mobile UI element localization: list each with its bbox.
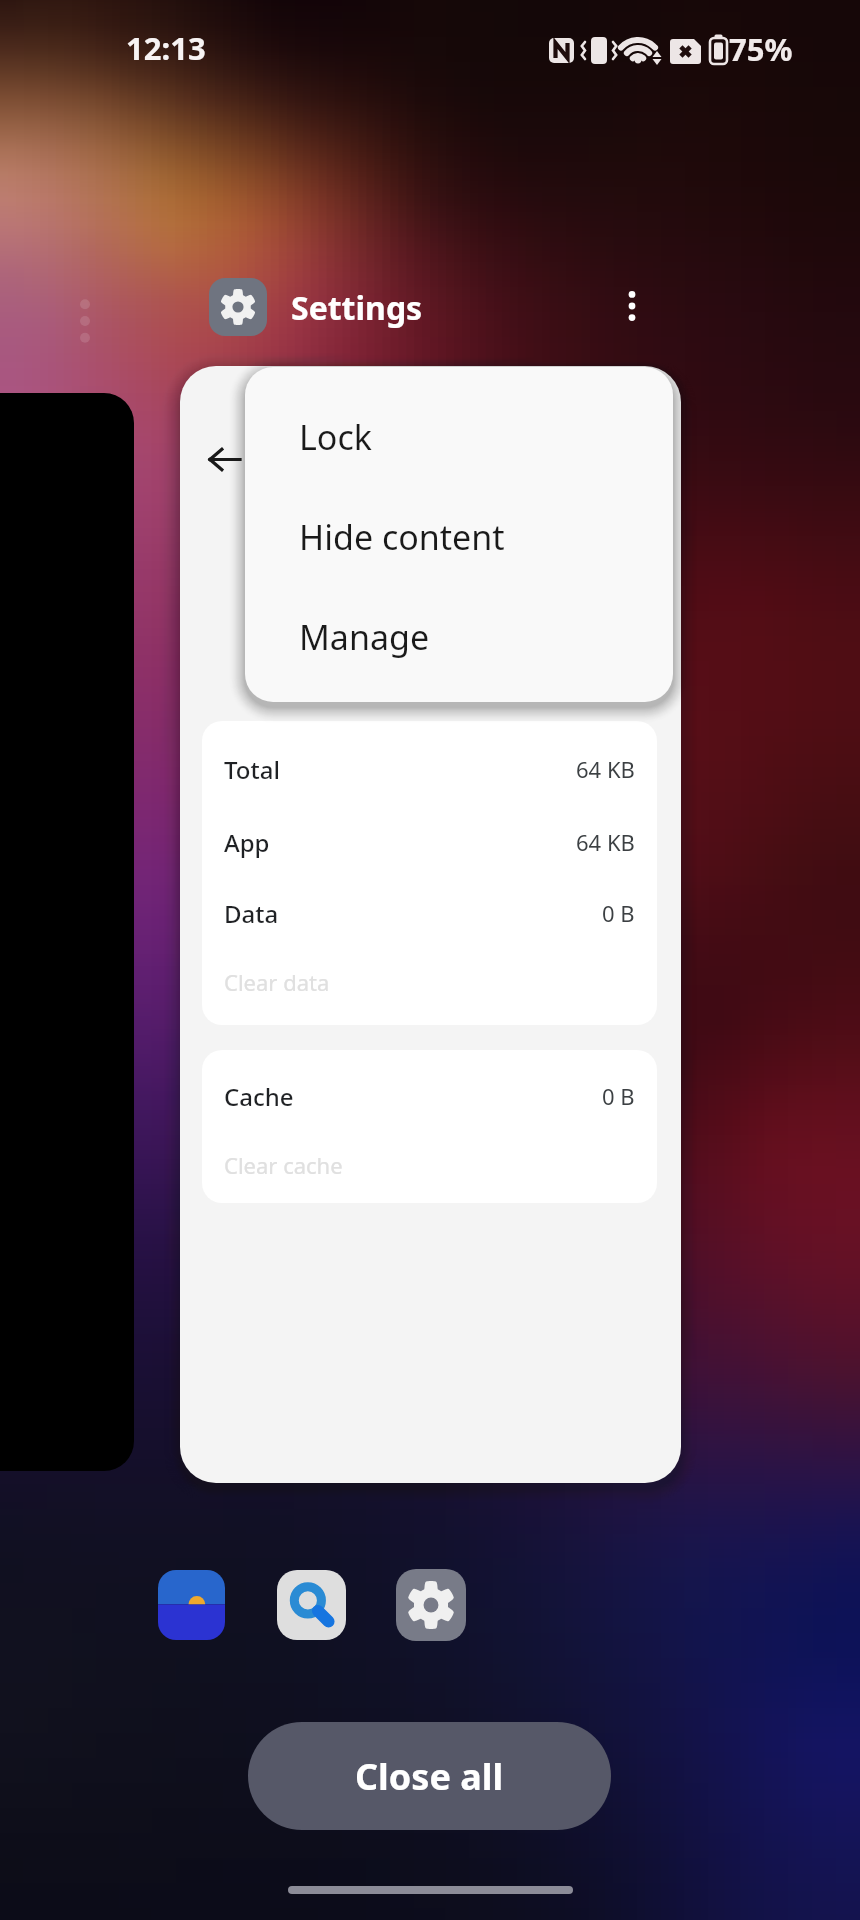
staticText: Total	[224, 753, 280, 786]
staticText: Settings	[291, 286, 423, 330]
staticText: 0 B	[602, 1081, 635, 1111]
button[interactable]: Photos	[158, 1570, 225, 1640]
staticText: App	[224, 826, 270, 859]
button[interactable]: More options	[604, 278, 660, 334]
button[interactable]: Lock	[299, 387, 619, 487]
button[interactable]: Search	[277, 1570, 346, 1640]
staticText: 12:13	[126, 27, 206, 69]
staticText: 0 B	[602, 898, 635, 928]
staticText: Data	[224, 897, 279, 930]
staticText: Lock	[299, 414, 372, 460]
staticText: Close all	[355, 1752, 504, 1801]
button[interactable]: Close all	[248, 1722, 611, 1830]
button[interactable]: Hide content	[299, 487, 619, 587]
staticText: 64 KB	[576, 827, 635, 857]
staticText: Clear cache	[224, 1150, 343, 1180]
staticText: Clear data	[224, 967, 330, 997]
button[interactable]: Manage	[299, 587, 619, 687]
staticText: 64 KB	[576, 754, 635, 784]
button[interactable]: Settings app icon	[209, 278, 267, 336]
button[interactable]: App	[202, 818, 657, 866]
button[interactable]: Clear cache	[224, 1135, 635, 1195]
staticText: Cache	[224, 1080, 294, 1113]
button[interactable]: Clear data	[224, 952, 635, 1012]
button[interactable]: Settings	[396, 1569, 466, 1641]
button[interactable]: Back	[180, 366, 681, 1483]
button[interactable]: Back	[199, 434, 249, 484]
button[interactable]	[0, 393, 134, 1471]
button[interactable]: Total	[202, 745, 657, 793]
staticText: 75%	[729, 28, 793, 70]
button[interactable]: Data	[202, 889, 657, 937]
staticText: Manage	[299, 614, 430, 660]
button[interactable]: More options for previous app	[64, 285, 106, 357]
staticText: Hide content	[299, 514, 505, 560]
button[interactable]: Cache	[202, 1072, 657, 1120]
